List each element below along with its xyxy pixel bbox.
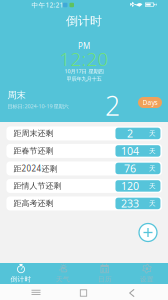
button[interactable]: Home xyxy=(72,284,96,300)
staticText: 2 xyxy=(127,126,133,141)
staticText: 12:20 xyxy=(59,46,108,71)
staticText: 10月17日 星期四 xyxy=(64,68,103,75)
staticText: 倒计时 xyxy=(10,275,31,283)
staticText: 天气 xyxy=(56,275,70,283)
staticText: 天 xyxy=(149,164,156,173)
button[interactable]: 距周末还剩 xyxy=(6,126,162,140)
staticText: 距春节还剩 xyxy=(13,146,53,156)
staticText: 天 xyxy=(149,129,156,138)
staticText: PM xyxy=(78,41,90,51)
staticText: 距情人节还剩 xyxy=(13,181,61,191)
button[interactable]: 设置 xyxy=(126,263,168,284)
staticText: 天 xyxy=(149,199,156,208)
button[interactable]: 天气 xyxy=(42,263,84,284)
button[interactable]: Add countdown xyxy=(139,223,157,241)
staticText: 距2024还剩 xyxy=(13,163,57,174)
staticText: 中午12:21 xyxy=(31,1,63,9)
staticText: 2 xyxy=(105,88,120,123)
button[interactable]: 日历 xyxy=(84,263,126,284)
button[interactable]: Back xyxy=(120,284,144,300)
staticText: Days xyxy=(142,98,157,107)
button[interactable]: 距2024还剩 xyxy=(6,161,162,175)
staticText: 设置 xyxy=(140,275,154,283)
staticText: 120 xyxy=(121,179,139,193)
staticText: 天 xyxy=(149,182,156,190)
staticText: 目标日: 2024-10-19 星期六 xyxy=(8,103,69,110)
staticText: 距高考还剩 xyxy=(13,198,53,208)
button[interactable]: 距高考还剩 xyxy=(6,196,162,210)
staticText: 甲辰年九月十五 xyxy=(66,76,101,82)
staticText: 周末 xyxy=(8,89,26,101)
staticText: 104 xyxy=(121,144,139,158)
staticText: 倒计时 xyxy=(66,14,102,28)
staticText: 天 xyxy=(149,147,156,155)
staticText: 日历 xyxy=(98,275,112,283)
staticText: 233 xyxy=(121,196,139,211)
button[interactable]: 距春节还剩 xyxy=(6,144,162,158)
staticText: 距周末还剩 xyxy=(13,128,53,138)
button[interactable]: Days xyxy=(138,97,162,108)
button[interactable]: 倒计时 xyxy=(0,263,42,284)
button[interactable]: 距情人节还剩 xyxy=(6,179,162,193)
staticText: 76 xyxy=(124,161,136,176)
button[interactable]: Recent apps xyxy=(24,284,48,300)
